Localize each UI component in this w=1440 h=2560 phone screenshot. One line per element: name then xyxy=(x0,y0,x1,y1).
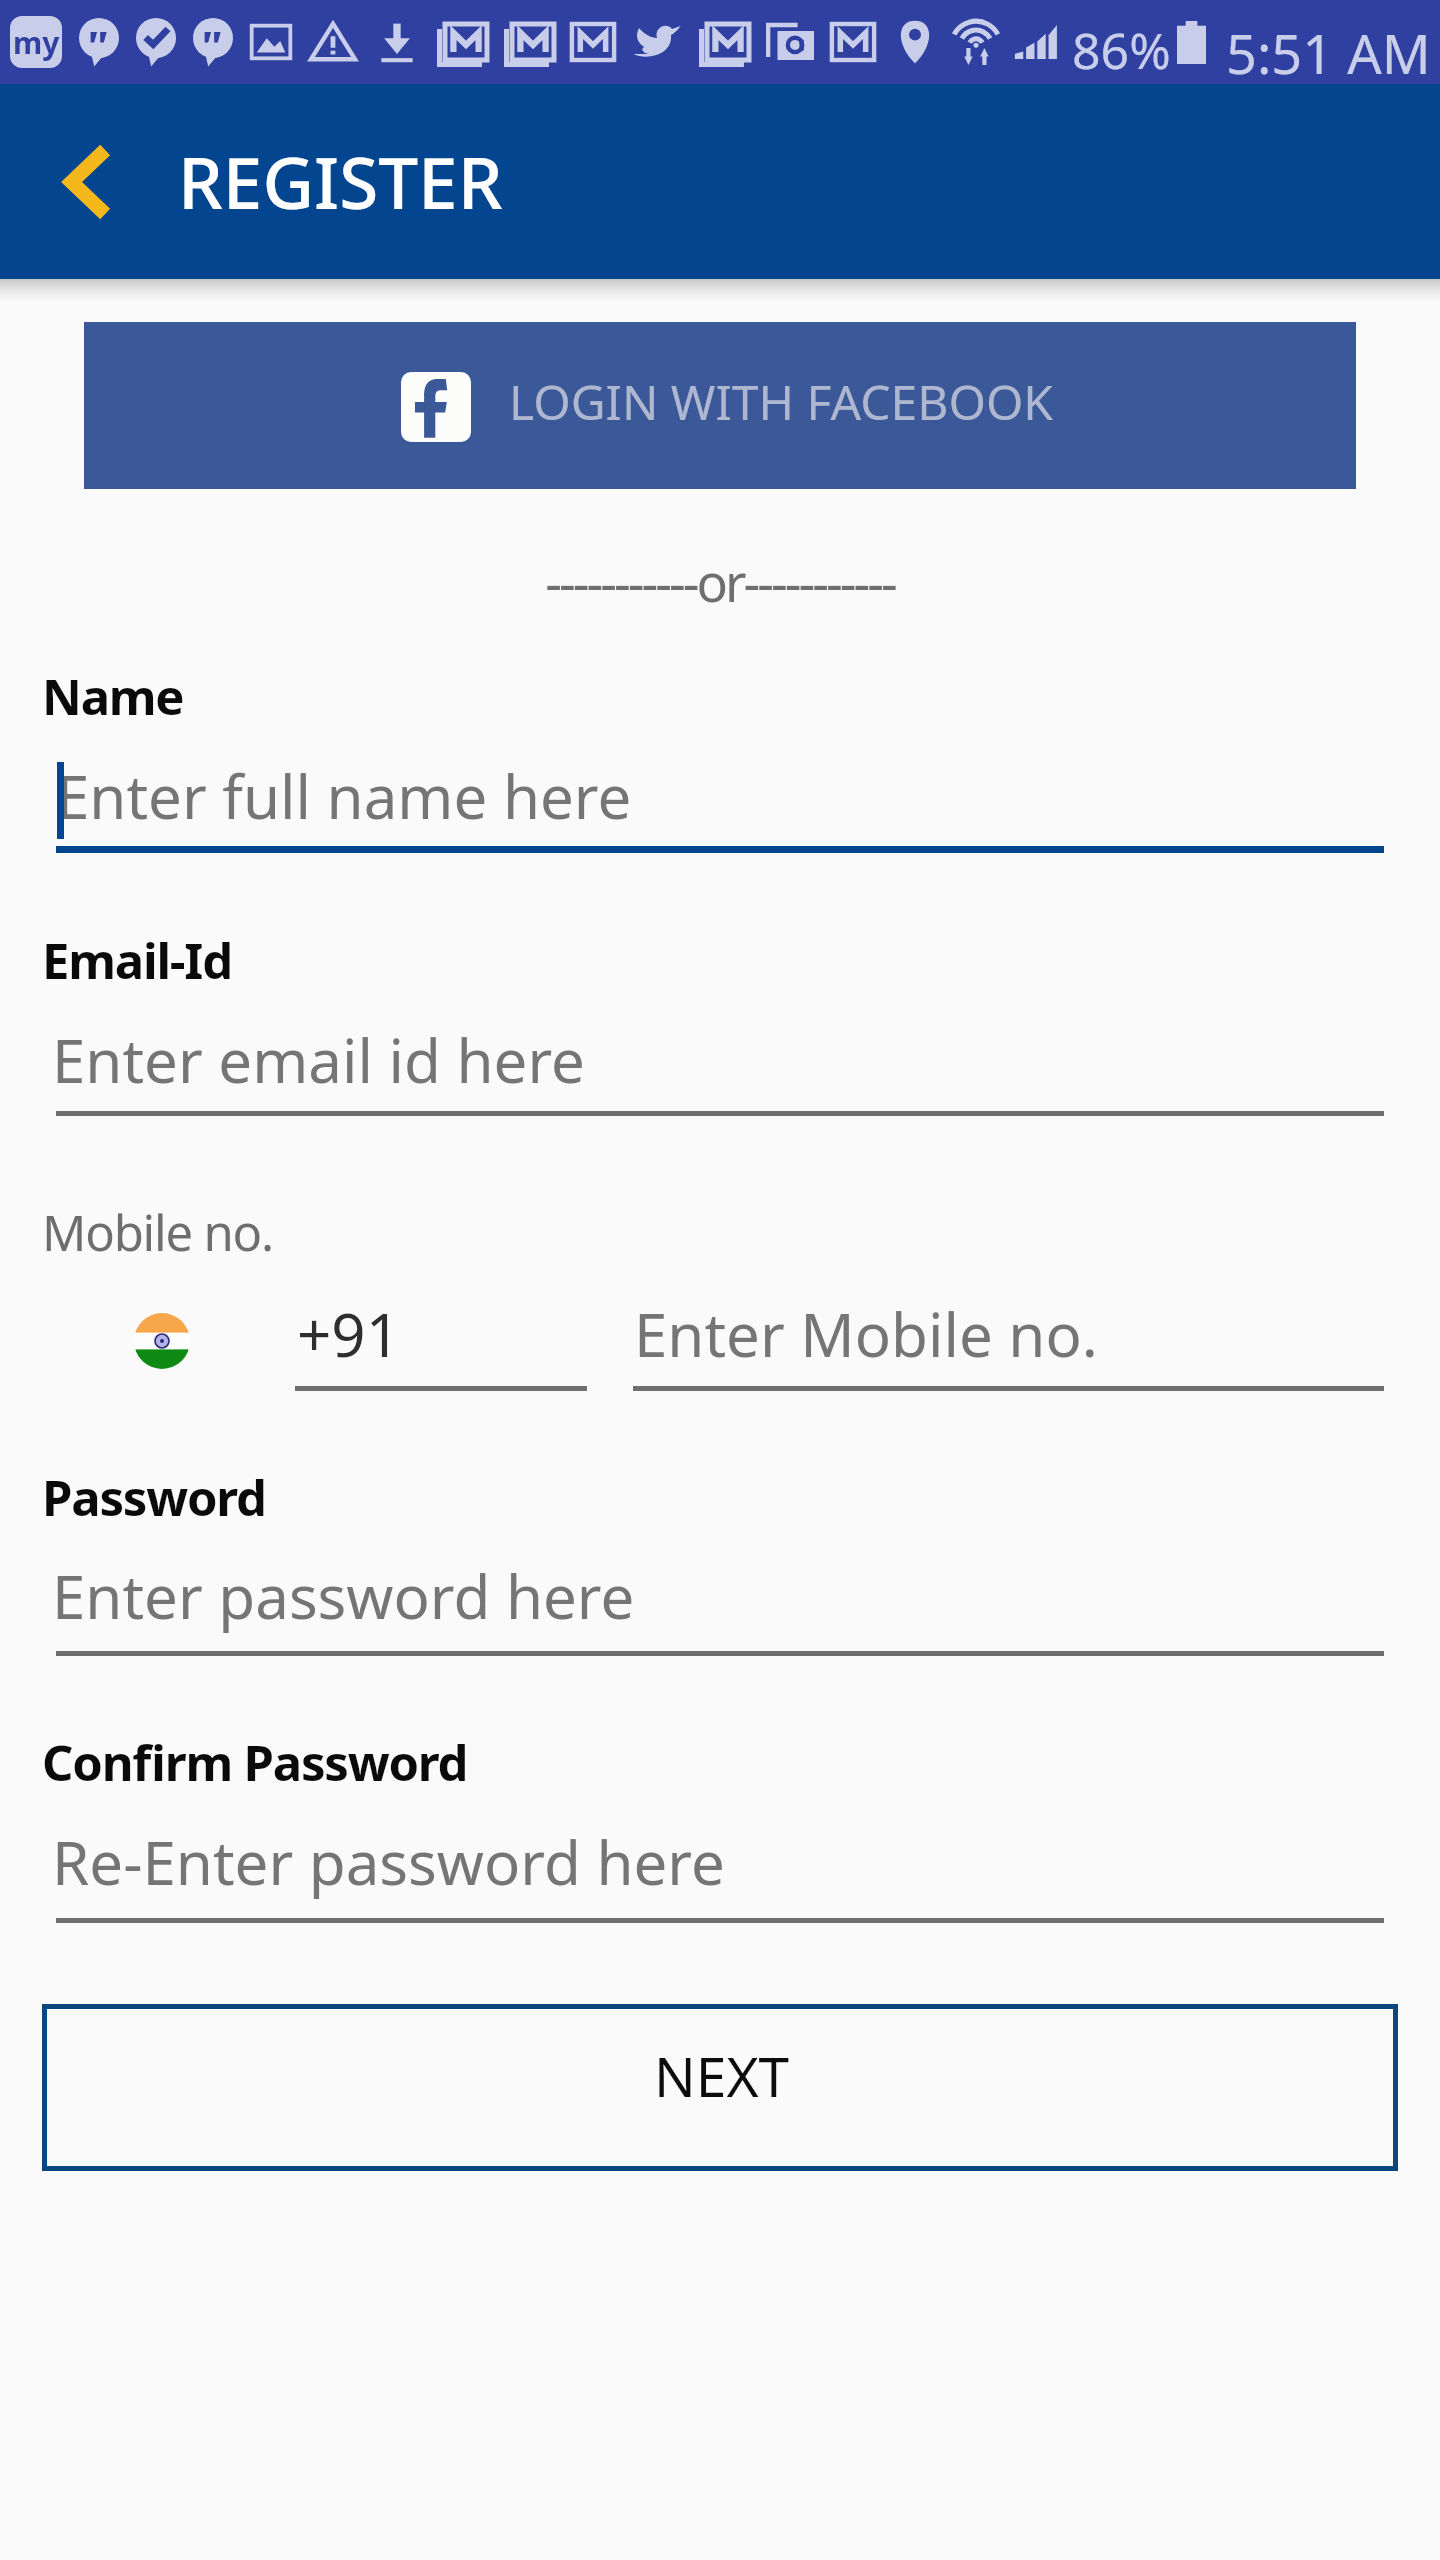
staticText: Enter Mobile no. xyxy=(634,1293,1098,1375)
staticText: LOGIN WITH FACEBOOK xyxy=(509,369,1054,434)
staticText: Name xyxy=(42,663,184,730)
button[interactable]: NEXT xyxy=(42,2004,1398,2171)
button[interactable] xyxy=(295,1285,587,1391)
staticText: +91 xyxy=(297,1293,400,1375)
staticText: 5:51 AM xyxy=(1226,16,1431,90)
staticText: Password xyxy=(42,1464,266,1531)
staticText: my xyxy=(13,22,60,63)
staticText: Enter email id here xyxy=(52,1019,585,1101)
button[interactable] xyxy=(56,1817,1384,1923)
staticText: Email-Id xyxy=(42,927,232,994)
staticText: Mobile no. xyxy=(42,1199,273,1266)
staticText: 86% xyxy=(1072,16,1171,84)
button[interactable] xyxy=(633,1285,1384,1391)
button[interactable] xyxy=(56,1550,1384,1656)
staticText: -----------or----------- xyxy=(545,546,895,617)
button[interactable]: Back xyxy=(37,134,133,230)
staticText: Re-Enter password here xyxy=(52,1821,725,1903)
button[interactable]: LOGIN WITH FACEBOOK xyxy=(84,322,1356,489)
button[interactable] xyxy=(56,1010,1384,1116)
staticText: Enter full name here xyxy=(56,755,632,837)
button[interactable] xyxy=(56,745,1384,853)
staticText: NEXT xyxy=(654,2038,790,2113)
staticText: Enter password here xyxy=(52,1555,635,1637)
staticText: Confirm Password xyxy=(42,1729,468,1796)
staticText: REGISTER xyxy=(178,133,503,230)
